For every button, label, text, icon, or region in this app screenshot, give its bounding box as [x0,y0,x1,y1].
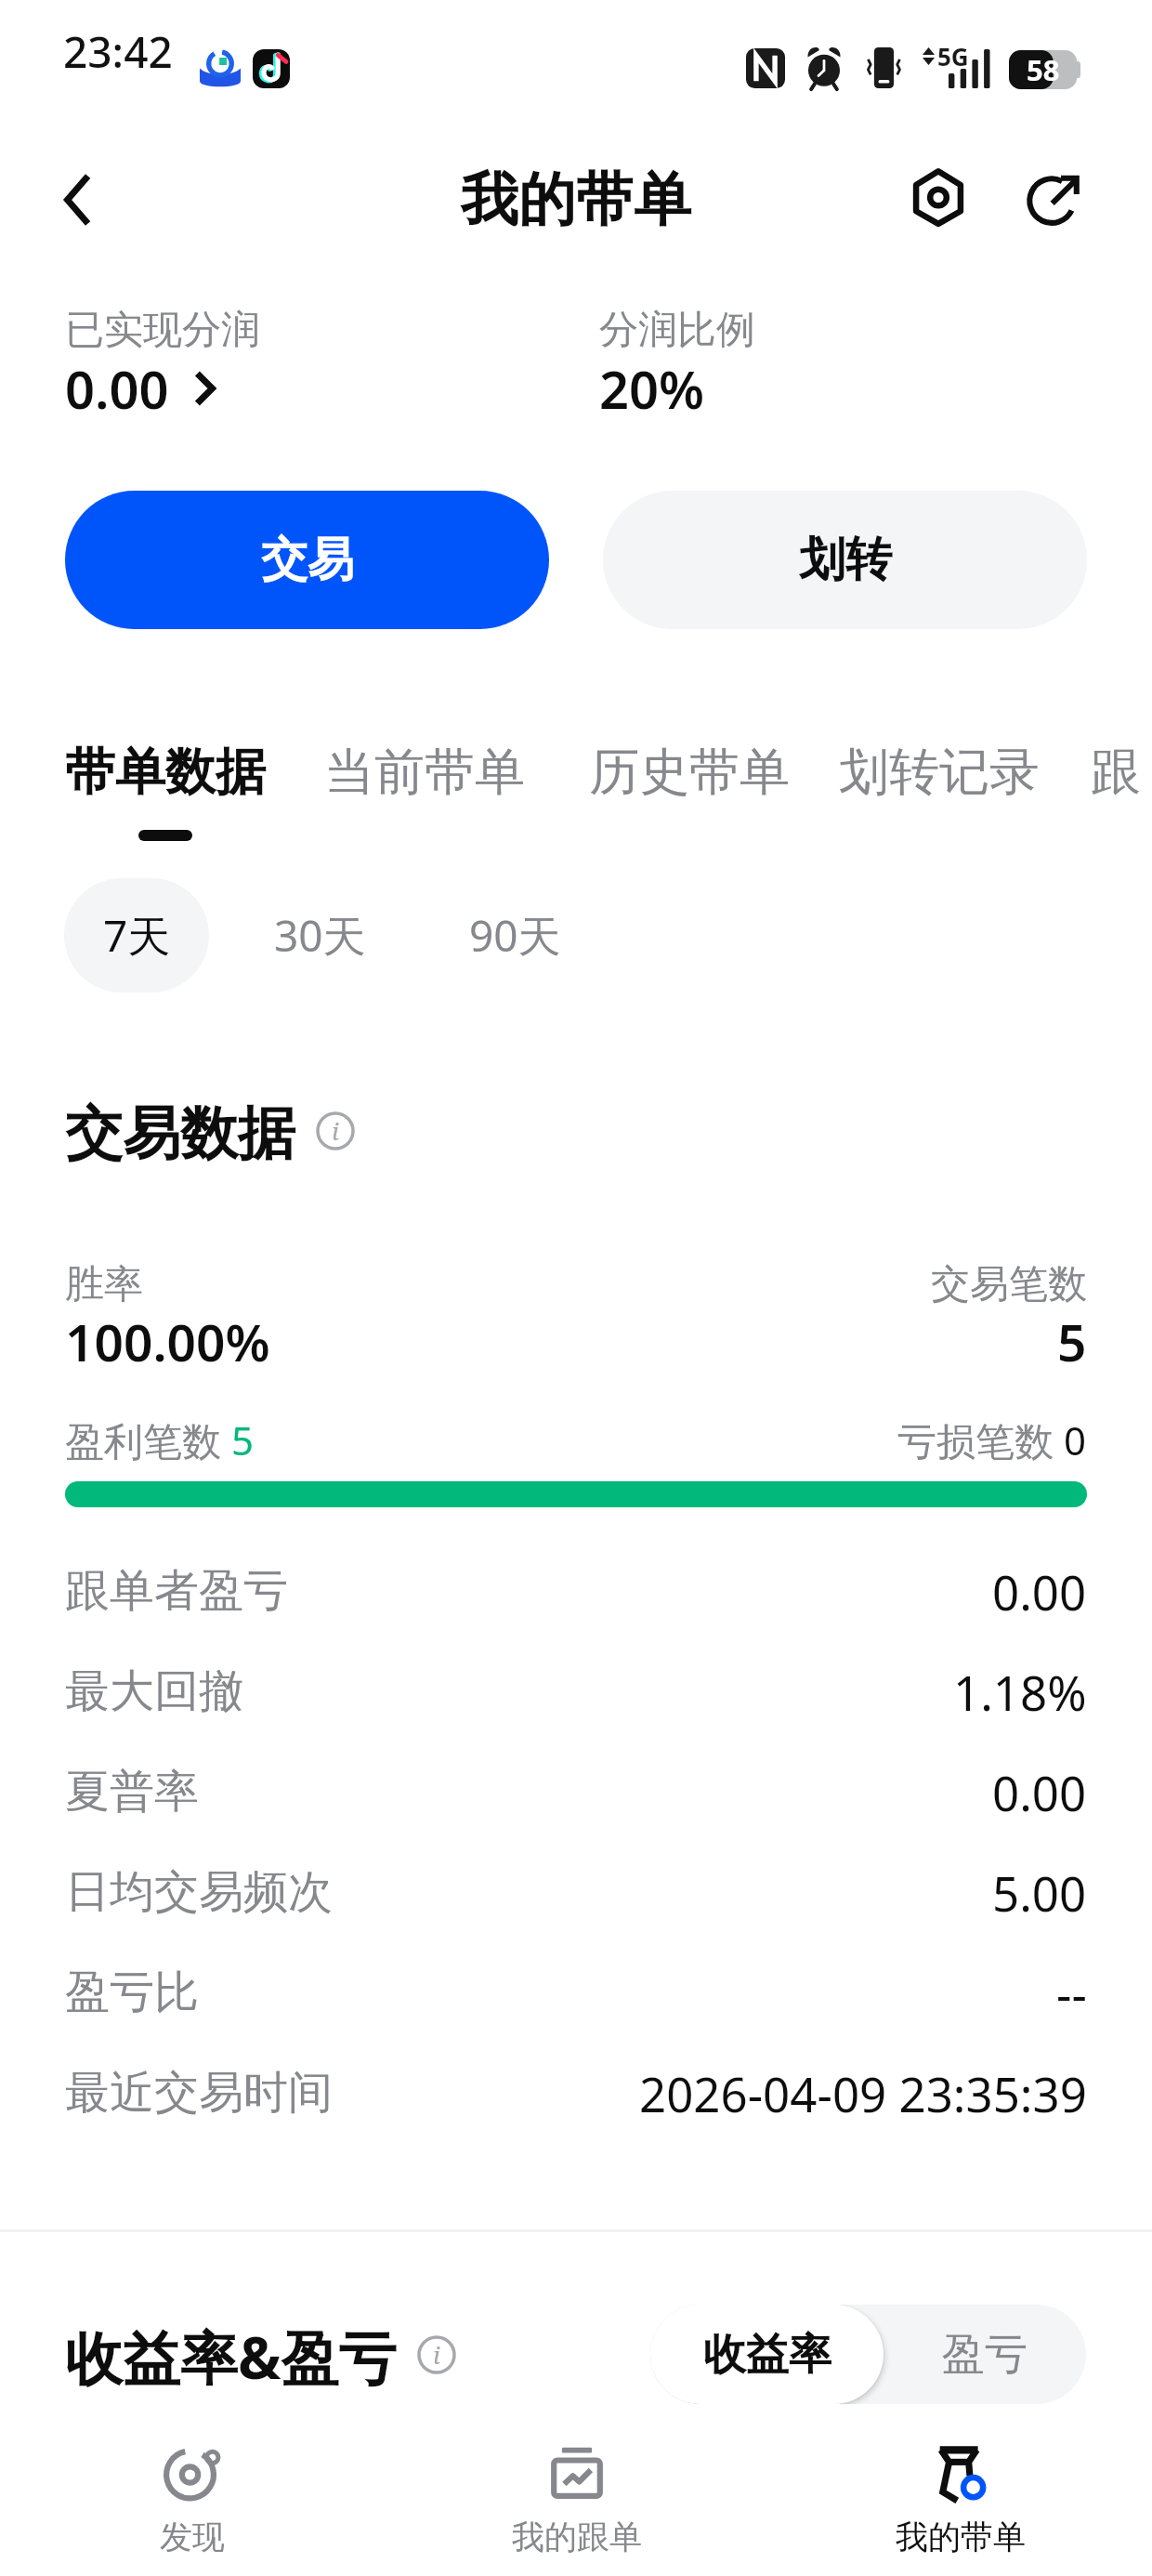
staticText: 5 [231,1413,255,1466]
staticText: 我的带单 [461,164,691,236]
button[interactable]: Settings [906,164,971,230]
button[interactable]: 30天 [209,878,430,992]
button[interactable]: 带单数据 [65,741,266,841]
staticText: i [332,1114,339,1147]
staticText: 交易 [261,531,354,589]
button[interactable]: 历史带单 [589,741,790,830]
staticText: 最大回撤 [65,1663,243,1719]
staticText: 0 [1064,1413,1087,1466]
button[interactable]: 发现 [0,2407,385,2576]
staticText: 最近交易时间 [65,2065,333,2121]
staticText: 7天 [103,906,171,965]
staticText: 交易笔数 [931,1260,1087,1309]
button[interactable]: 跟 [1091,741,1141,830]
staticText: 2026-04-09 23:35:39 [639,2061,1087,2125]
staticText: 盈亏 [942,2328,1028,2382]
staticText: 分润比例 [599,306,755,355]
staticText: 带单数据 [65,741,266,804]
staticText: 历史带单 [589,741,790,804]
staticText: 5G [937,40,969,72]
staticText: 23:42 [63,22,173,81]
staticText: 盈亏比 [65,1965,199,2020]
staticText: 5.00 [992,1860,1087,1925]
staticText: 跟单者盈亏 [65,1563,288,1619]
button[interactable]: 我的带单 [768,2407,1152,2576]
staticText: i [433,2338,440,2371]
staticText: 收益率&盈亏 [65,2318,397,2397]
button[interactable]: 交易 [65,491,549,629]
button[interactable]: 当前带单 [324,741,525,830]
button[interactable]: 90天 [430,878,599,992]
staticText: 5 [1057,1307,1087,1376]
button[interactable]: 0.00 [65,353,221,424]
staticText: 0.00 [65,353,169,424]
button[interactable]: 7天 [64,878,209,992]
staticText: 交易数据 [65,1097,295,1170]
button[interactable]: 划转 [603,491,1087,629]
staticText: 100.00% [65,1307,270,1376]
staticText: 30天 [274,906,366,965]
staticText: 1.18% [953,1660,1087,1724]
button[interactable]: Share [1022,164,1087,230]
staticText: 90天 [469,906,561,965]
staticText: 收益率 [703,2328,831,2382]
staticText: 我的带单 [896,2517,1026,2557]
staticText: 58 [1027,50,1060,89]
button[interactable]: 我的跟单 [385,2407,768,2576]
staticText: 我的跟单 [512,2517,642,2557]
staticText: 夏普率 [65,1764,199,1820]
staticText: 跟 [1091,741,1141,804]
staticText: 当前带单 [324,741,525,804]
staticText: 0.00 [992,1559,1087,1623]
staticText: 已实现分润 [65,306,260,355]
staticText: 划转 [799,531,892,589]
button[interactable]: 划转记录 [839,741,1040,830]
staticText: 0.00 [992,1760,1087,1824]
staticText: 亏损笔数 [897,1413,1064,1466]
button[interactable]: Back [43,164,113,235]
staticText: 胜率 [65,1260,143,1309]
staticText: -- [1056,1961,1087,2025]
staticText: 划转记录 [839,741,1040,804]
button[interactable]: 收益率 [650,2305,884,2404]
staticText: 发现 [160,2517,225,2557]
staticText: 20% [599,353,705,424]
staticText: 盈利笔数 [65,1413,231,1466]
button[interactable]: 盈亏 [884,2305,1086,2404]
staticText: 日均交易频次 [65,1864,333,1920]
